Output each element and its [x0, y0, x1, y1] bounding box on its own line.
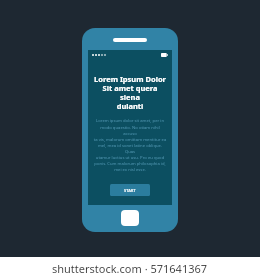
staticText: Lorem ipsum dolor sit amet, per in modo …	[93, 118, 167, 172]
staticText: Lorem Ipsum Dolor Sit amet quera siena d…	[92, 74, 168, 112]
staticText: START	[124, 188, 136, 193]
button[interactable]: START	[110, 184, 150, 196]
staticText: shutterstock.com · 571641367	[52, 261, 208, 276]
button[interactable]: Home	[121, 210, 139, 226]
